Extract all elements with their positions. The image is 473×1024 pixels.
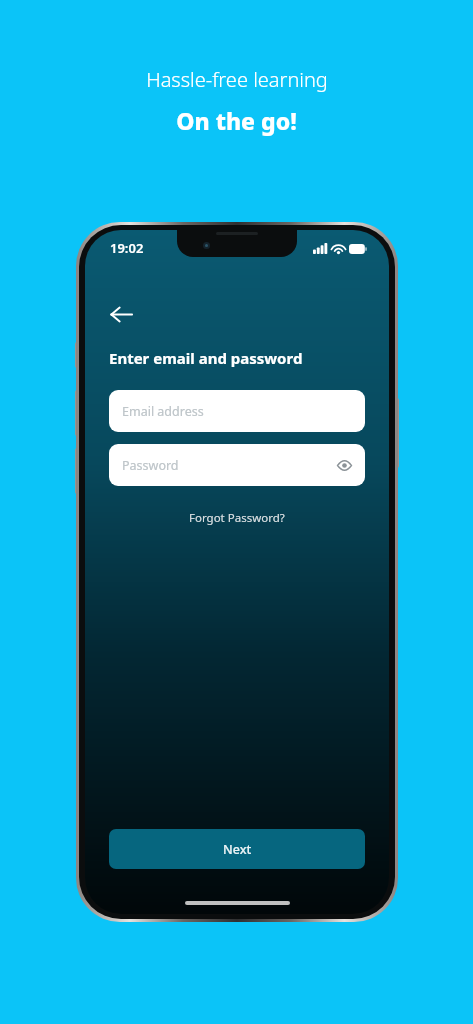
staticText: Enter email and password xyxy=(109,348,303,368)
staticText: 19:02 xyxy=(110,239,144,257)
staticText: On the go! xyxy=(176,105,297,136)
staticText: Password xyxy=(122,457,179,474)
staticText: Email address xyxy=(122,403,204,420)
button[interactable]: Password xyxy=(109,444,365,486)
staticText: Next xyxy=(223,841,252,858)
staticText: Forgot Password? xyxy=(189,510,285,526)
button[interactable]: Back xyxy=(99,292,143,336)
button[interactable]: Next xyxy=(109,829,365,869)
button[interactable]: Email address xyxy=(109,390,365,432)
button[interactable]: Show password xyxy=(331,452,357,478)
button[interactable]: Forgot Password? xyxy=(179,506,295,530)
staticText: Hassle-free learning xyxy=(146,66,328,93)
